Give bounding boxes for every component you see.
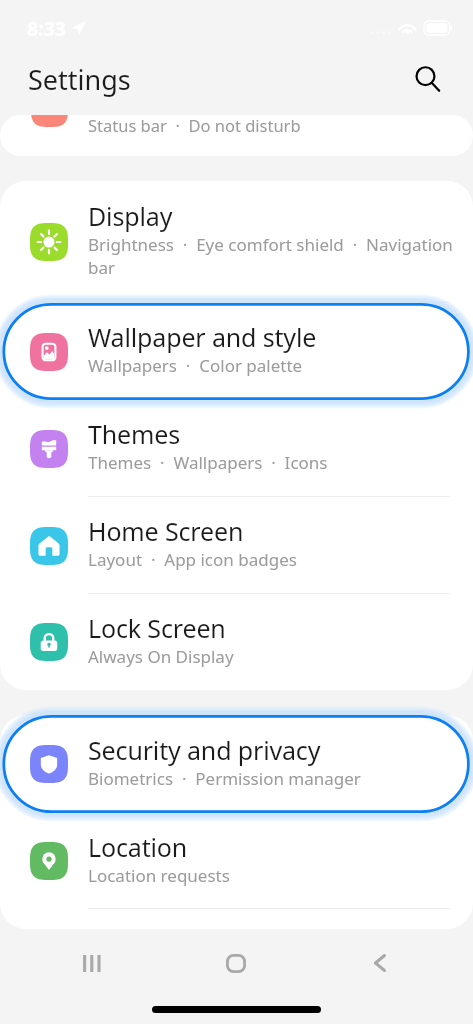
button[interactable]: Home <box>208 935 264 991</box>
staticText: Layout · App icon badges <box>88 548 297 571</box>
button[interactable]: Display <box>0 181 473 303</box>
button[interactable]: Lock Screen <box>0 594 473 690</box>
staticText: Lock Screen <box>88 611 226 645</box>
button[interactable]: Search <box>407 58 449 100</box>
staticText: Location <box>88 830 188 864</box>
button[interactable]: Themes <box>0 400 473 497</box>
staticText: 8:33 <box>27 15 66 42</box>
staticText: Security and privacy <box>88 733 321 767</box>
staticText: Wallpaper and style <box>88 320 317 354</box>
staticText: Wallpapers · Color palette <box>88 354 303 377</box>
staticText: Settings <box>28 61 131 98</box>
staticText: Brightness · Eye comfort shield · Naviga… <box>88 233 460 279</box>
button[interactable]: Back <box>352 935 408 991</box>
staticText: Home Screen <box>88 514 244 548</box>
staticText: Location requests <box>88 864 230 887</box>
staticText: Status bar · Do not disturb <box>88 115 301 136</box>
button[interactable]: Home Screen <box>0 497 473 594</box>
staticText: Themes <box>88 417 181 451</box>
staticText: Biometrics · Permission manager <box>88 767 361 790</box>
staticText: Always On Display <box>88 645 234 668</box>
button[interactable]: Status bar · Do not disturb <box>0 115 473 156</box>
staticText: Display <box>88 199 173 233</box>
button[interactable]: Security and privacy <box>0 715 473 813</box>
button[interactable]: Recent apps <box>64 935 120 991</box>
staticText: Themes · Wallpapers · Icons <box>88 451 328 474</box>
button[interactable]: Wallpaper and style <box>0 303 473 400</box>
button[interactable]: Location <box>0 813 473 909</box>
